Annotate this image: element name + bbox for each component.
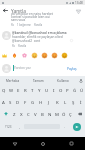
button[interactable]: Z [11,108,18,120]
staticText: @bandeuil @bonushool em açıklama [12,31,67,35]
staticText: İ [80,99,82,105]
staticText: X [20,111,23,117]
button[interactable]: K [53,96,61,108]
button[interactable]: P [64,84,71,96]
button[interactable]: Backspace [74,108,85,120]
button[interactable]: U [43,84,50,96]
staticText: Ş [72,99,75,105]
button[interactable]: J [45,96,53,108]
staticText: Yanıtını yaz [14,66,31,70]
button[interactable]: Emoji [42,53,47,58]
button[interactable]: V [32,108,39,120]
staticText: W [9,87,14,93]
staticText: O [59,87,63,93]
button[interactable]: Crown emoji [2,53,7,58]
staticText: J [48,99,50,105]
button[interactable]: Kullanıcı [51,76,76,84]
button[interactable]: Back [0,137,29,150]
staticText: A [2,99,5,105]
button[interactable]: E [15,84,22,96]
staticText: H [39,99,43,105]
button[interactable]: Back [0,5,11,16]
staticText: , [19,124,20,129]
button[interactable]: Ş [69,96,77,108]
button[interactable]: S [7,96,14,108]
staticText: Merhaba [6,79,20,83]
button[interactable]: Ü [78,84,85,96]
button[interactable]: Voice input [76,76,85,84]
button[interactable]: W [8,84,15,96]
button[interactable]: ?123 [0,120,16,133]
staticText: Q [2,87,6,93]
button[interactable]: F [21,96,29,108]
staticText: Kullanıcı [57,79,70,83]
button[interactable]: Ö [60,108,67,120]
button[interactable]: L [61,96,69,108]
button[interactable]: Home [29,137,57,150]
button[interactable]: O [57,84,64,96]
button[interactable]: İ [77,96,85,108]
button[interactable]: Y [36,84,43,96]
button[interactable]: Blossom emoji [22,53,27,58]
staticText: sans vous [11,18,26,22]
staticText: R [24,87,27,93]
button[interactable]: Emoji [62,53,67,58]
staticText: Yanıtla [11,8,27,15]
staticText: Ü [80,87,84,93]
button[interactable]: Send [68,120,85,133]
button[interactable]: X [18,108,25,120]
button[interactable]: Emoji [52,53,57,58]
staticText: Paylaş [67,67,77,71]
staticText: S [9,99,12,105]
button[interactable]: Ğ [71,84,78,96]
button[interactable]: R [22,84,29,96]
staticText: 13:48 [75,1,83,5]
button[interactable]: M [53,108,60,120]
staticText: yorum pour en naiss hareket [11,12,53,16]
staticText: N [48,111,52,117]
staticText: . [64,124,65,129]
button[interactable]: , [16,120,23,133]
staticText: hazırdılar, elimfik ve paylaşan olted [12,35,63,39]
button[interactable]: Emoji [32,53,37,58]
button[interactable]: D [14,96,21,108]
staticText: L [64,99,67,105]
staticText: E [17,87,20,93]
button[interactable]: Fire emoji [12,53,17,58]
button[interactable]: I [50,84,57,96]
staticText: Yanıtla [18,44,27,48]
button[interactable]: Q [0,84,8,96]
button[interactable]: T [29,84,36,96]
button[interactable]: H [37,96,45,108]
staticText: Ğ [73,87,77,93]
button[interactable]: A [0,96,7,108]
staticText: K [56,99,59,105]
staticText: Yanıtla [34,23,43,27]
staticText: Ya [11,23,14,27]
button[interactable]: B [39,108,46,120]
button[interactable]: Merhaba [0,76,26,84]
staticText: U [45,87,49,93]
button[interactable]: C [25,108,32,120]
button[interactable]: Tamam [26,76,51,84]
staticText: Ö [62,111,66,117]
staticText: M [55,111,59,117]
staticText: Ya [12,44,15,48]
staticText: Y [38,87,41,93]
staticText: 1 beğenme [17,23,31,27]
button[interactable]: Ç [67,108,74,120]
staticText: C [27,111,30,117]
button[interactable]: N [46,108,53,120]
staticText: P [66,87,69,93]
button[interactable]: Recents [57,137,85,150]
button[interactable]: Paylaş [63,65,81,73]
staticText: I [53,87,55,93]
button[interactable]: G [29,96,37,108]
staticText: contrat si possible bien oui [11,15,50,19]
button[interactable]: Send reply [72,5,84,17]
button[interactable]: Shift [0,108,11,120]
staticText: B [41,111,44,117]
staticText: T [31,87,34,93]
